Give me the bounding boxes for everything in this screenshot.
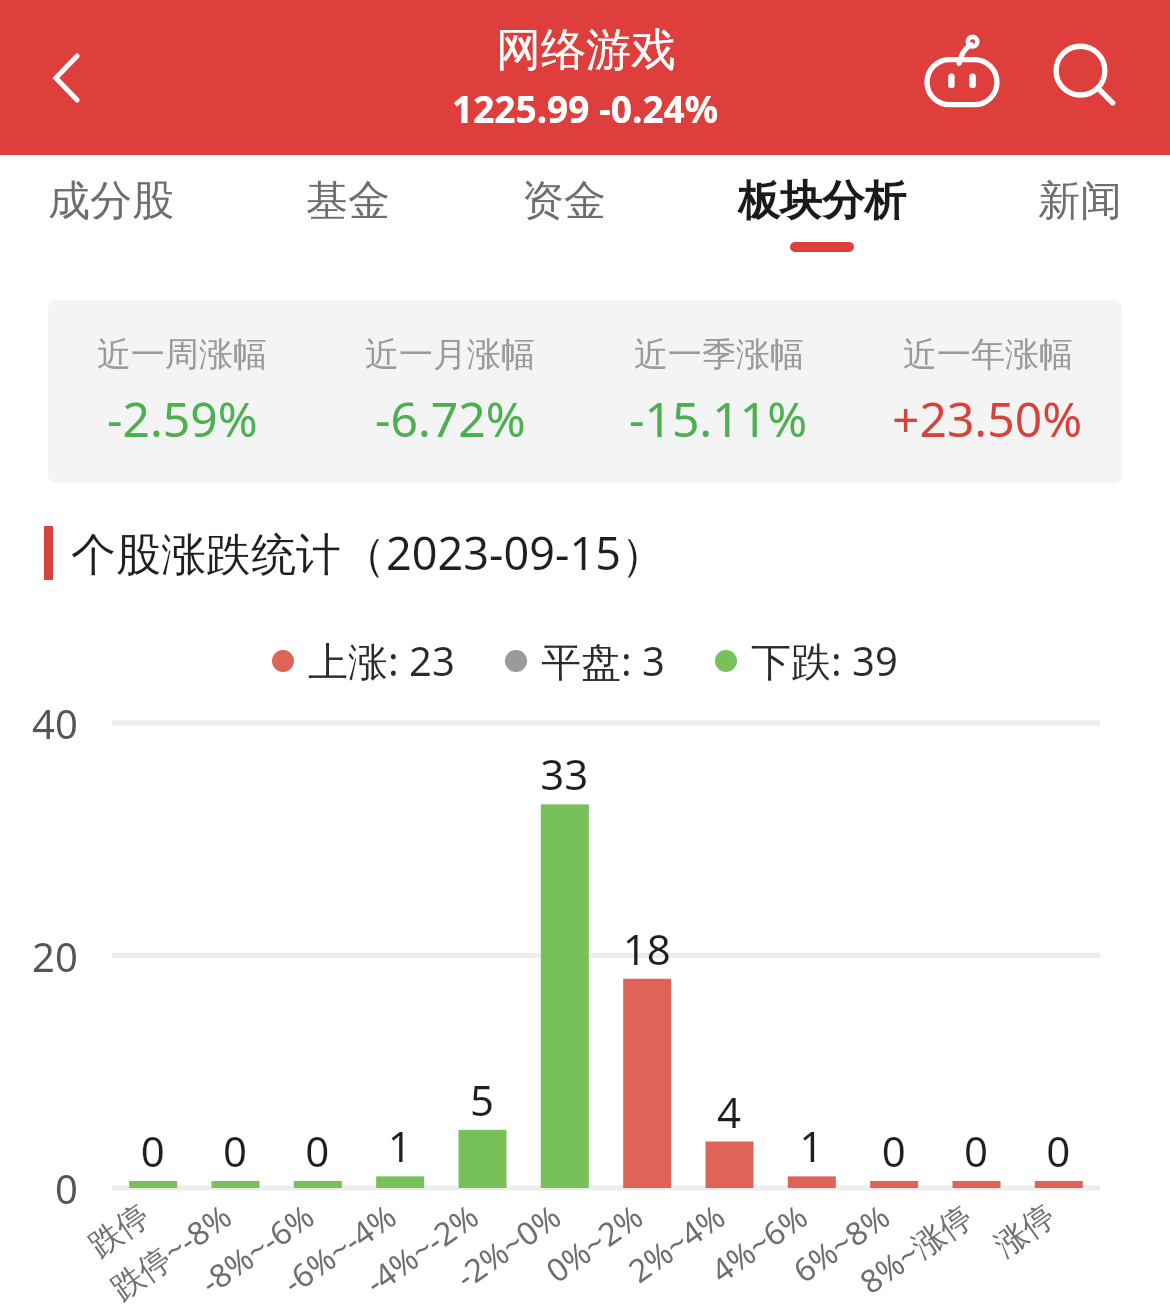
staticText: 近一周涨幅 <box>97 333 267 376</box>
staticText: 板块分析 <box>738 175 906 228</box>
staticText: 网络游戏 <box>496 22 676 79</box>
button[interactable]: Back <box>30 40 106 116</box>
staticText: 成分股 <box>48 175 174 228</box>
button[interactable]: Search <box>1040 32 1132 124</box>
staticText: 平盘: 3 <box>541 633 665 688</box>
staticText: 新闻 <box>1038 175 1122 228</box>
button[interactable]: 新闻 <box>1020 155 1140 262</box>
button[interactable]: 上涨: 23 <box>272 633 455 688</box>
button[interactable]: AI assistant <box>916 32 1008 124</box>
staticText: -15.11% <box>629 386 808 451</box>
staticText: +23.50% <box>892 386 1083 451</box>
staticText: 资金 <box>522 175 606 228</box>
button[interactable]: 基金 <box>288 155 408 262</box>
staticText: 下跌: 39 <box>751 633 898 688</box>
button[interactable]: 下跌: 39 <box>715 633 898 688</box>
staticText: 近一季涨幅 <box>634 333 804 376</box>
staticText: 上涨: 23 <box>308 633 455 688</box>
staticText: 近一月涨幅 <box>365 333 535 376</box>
staticText: -6.72% <box>375 386 526 451</box>
button[interactable]: 成分股 <box>30 155 192 262</box>
button[interactable]: 近一周涨幅 <box>48 300 1122 483</box>
button[interactable]: 平盘: 3 <box>505 633 665 688</box>
staticText: 1225.99 -0.24% <box>452 83 719 133</box>
button[interactable]: 板块分析 <box>720 155 924 272</box>
staticText: 个股涨跌统计（2023-09-15） <box>71 522 666 583</box>
staticText: -2.59% <box>107 386 258 451</box>
staticText: 基金 <box>306 175 390 228</box>
staticText: 近一年涨幅 <box>903 333 1073 376</box>
button[interactable]: 资金 <box>504 155 624 262</box>
